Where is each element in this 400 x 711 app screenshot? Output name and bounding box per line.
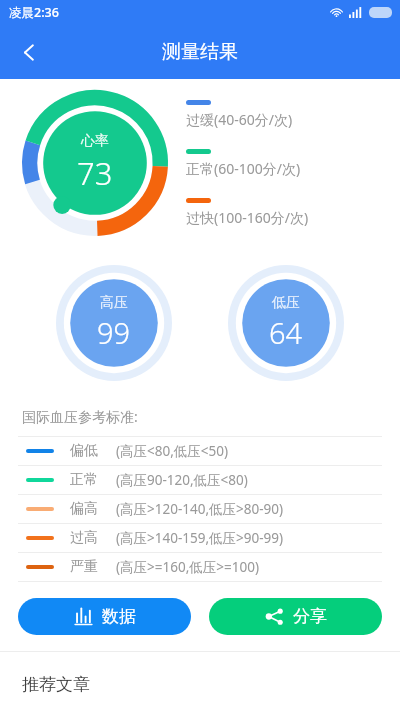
staticText: 严重: [70, 558, 116, 576]
staticText: 过快(100-160分/次): [186, 208, 309, 227]
staticText: 分享: [293, 606, 327, 627]
staticText: 偏高: [70, 500, 116, 518]
staticText: 正常: [70, 471, 116, 489]
staticText: 64: [269, 313, 303, 352]
staticText: 推荐文章: [22, 674, 90, 695]
staticText: 过缓(40-60分/次): [186, 110, 293, 129]
staticText: 凌晨2:36: [9, 4, 59, 21]
staticText: (高压90-120,低压<80): [116, 471, 248, 489]
staticText: (高压<80,低压<50): [116, 442, 229, 460]
staticText: 73: [77, 152, 113, 194]
staticText: 心率: [81, 132, 109, 150]
button[interactable]: Back: [6, 29, 52, 75]
staticText: 偏低: [70, 442, 116, 460]
staticText: 过高: [70, 529, 116, 547]
staticText: 高压: [100, 294, 128, 312]
button[interactable]: 数据: [18, 598, 191, 635]
staticText: 99: [97, 313, 131, 352]
button[interactable]: 分享: [209, 598, 382, 635]
staticText: 数据: [102, 606, 136, 627]
staticText: (高压>140-159,低压>90-99): [116, 529, 284, 547]
staticText: 国际血压参考标准:: [22, 407, 138, 426]
staticText: 正常(60-100分/次): [186, 159, 301, 178]
staticText: (高压>120-140,低压>80-90): [116, 500, 284, 518]
staticText: 低压: [272, 294, 300, 312]
staticText: (高压>=160,低压>=100): [116, 558, 259, 576]
staticText: 测量结果: [162, 40, 238, 64]
